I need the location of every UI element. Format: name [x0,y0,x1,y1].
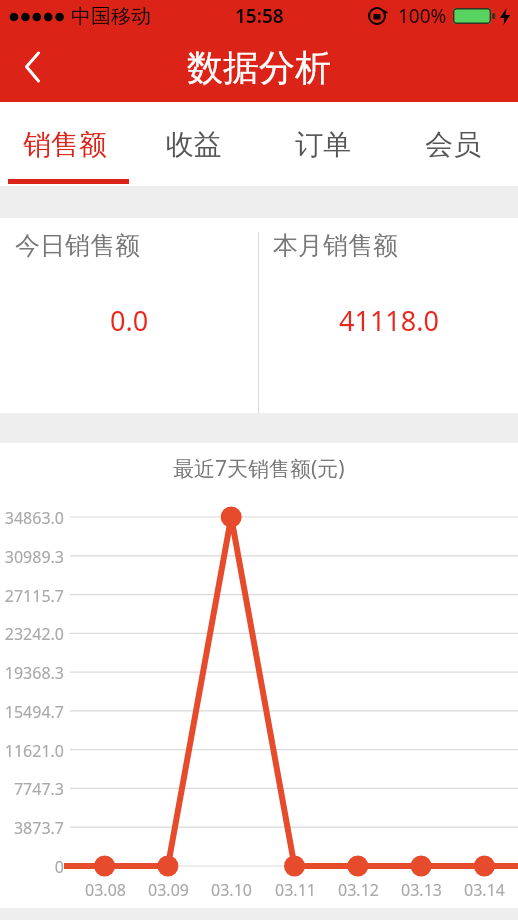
button[interactable]: 今日销售额 [0,218,258,413]
staticText: 0.0 [110,302,149,339]
staticText: 27115.7 [4,585,64,607]
staticText: 03.13 [401,879,442,901]
staticText: 今日销售额 [15,230,140,261]
button[interactable] [0,32,60,102]
staticText: 23242.0 [4,623,64,645]
staticText: 03.14 [464,879,505,901]
staticText: 最近7天销售额(元) [173,454,345,483]
staticText: 15494.7 [4,701,64,723]
staticText: 0 [54,856,64,878]
staticText: 19368.3 [4,662,64,684]
button[interactable]: 销售额 [0,102,129,186]
staticText: 03.08 [85,879,126,901]
staticText: 03.12 [338,879,379,901]
staticText: 销售额 [23,127,107,162]
staticText: 41118.0 [339,302,439,339]
staticText: 100% [398,3,447,29]
staticText: 订单 [295,127,351,162]
staticText: 3873.7 [13,817,64,839]
staticText: 15:58 [235,3,284,29]
staticText: 34863.0 [4,507,64,529]
staticText: 收益 [166,127,222,162]
staticText: 中国移动 [71,4,151,29]
staticText: 03.11 [275,879,316,901]
staticText: 11621.0 [4,740,64,762]
staticText: 会员 [425,127,481,162]
staticText: 本月销售额 [273,230,398,261]
staticText: 7747.3 [13,778,64,800]
button[interactable]: 订单 [258,102,388,186]
staticText: 03.10 [211,879,252,901]
button[interactable]: 收益 [129,102,258,186]
button[interactable]: 本月销售额 [259,218,518,413]
staticText: 03.09 [148,879,189,901]
button[interactable]: 会员 [388,102,518,186]
staticText: 30989.3 [4,546,64,568]
staticText: 数据分析 [187,45,331,90]
